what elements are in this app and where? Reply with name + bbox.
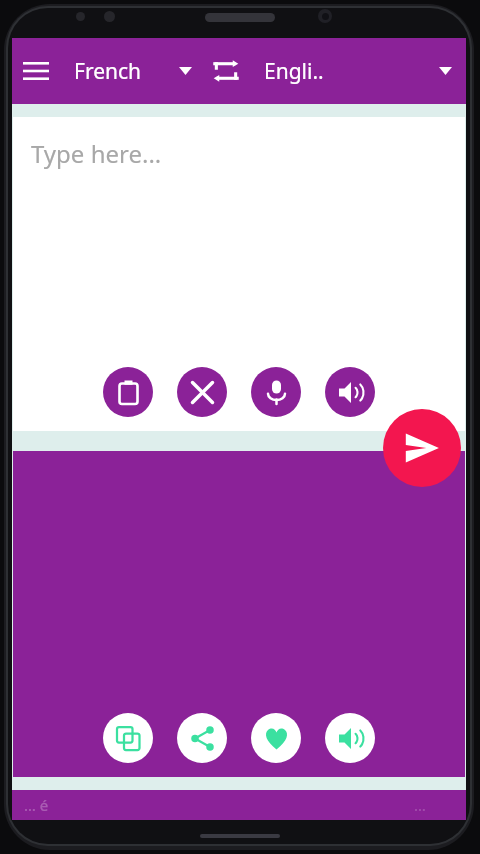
staticText: … [414,795,426,815]
button[interactable]: Speak text [325,367,375,417]
button[interactable]: Translate [383,409,461,487]
button[interactable]: Copy translation [103,713,153,763]
button[interactable]: … é [12,790,466,820]
button[interactable]: Add to favourites [251,713,301,763]
button[interactable]: Open navigation menu [12,47,60,95]
button[interactable]: Speak translation [325,713,375,763]
button[interactable]: Type here... [31,137,162,170]
button[interactable]: Engli.. [252,38,466,104]
staticText: Engli.. [264,57,324,86]
button[interactable]: French [60,38,200,104]
button[interactable]: Paste from clipboard [103,367,153,417]
button[interactable]: Clear text [177,367,227,417]
button[interactable]: Share translation [177,713,227,763]
staticText: French [74,57,142,86]
staticText: … é [24,795,49,815]
button[interactable]: Voice input [251,367,301,417]
button[interactable]: Swap languages [200,45,252,97]
